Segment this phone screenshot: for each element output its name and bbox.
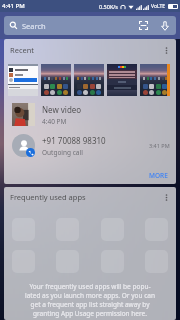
button[interactable]: Scan QR code	[135, 17, 152, 34]
staticText: VoLTE	[151, 3, 166, 10]
button[interactable]: MORE	[143, 168, 174, 183]
button[interactable]	[140, 64, 170, 96]
button[interactable]: Search	[4, 16, 176, 35]
staticText: Outgoing call	[42, 148, 83, 157]
staticText: +91 70088 98310	[42, 135, 106, 146]
button[interactable]: Downloads	[156, 17, 173, 34]
staticText: Frequently used apps	[10, 192, 157, 202]
staticText: Search	[22, 21, 135, 31]
staticText: 4:41 PM	[2, 2, 25, 10]
staticText: 3:41 PM	[149, 142, 170, 149]
button[interactable]: New video	[4, 99, 176, 130]
button[interactable]	[74, 64, 104, 96]
button[interactable]: +91 70088 98310	[4, 130, 176, 161]
button[interactable]: More options	[157, 41, 175, 59]
button[interactable]	[107, 64, 137, 96]
button[interactable]: More options	[157, 188, 175, 206]
staticText: Recent	[10, 45, 157, 55]
staticText: MORE	[149, 171, 168, 180]
button[interactable]	[8, 64, 38, 96]
staticText: 4:40 PM	[42, 117, 67, 126]
staticText: New video	[42, 104, 82, 115]
staticText: Your frequently used apps will be popu-l…	[22, 282, 158, 318]
button[interactable]	[41, 64, 71, 96]
staticText: 0.50K/s	[99, 3, 118, 10]
